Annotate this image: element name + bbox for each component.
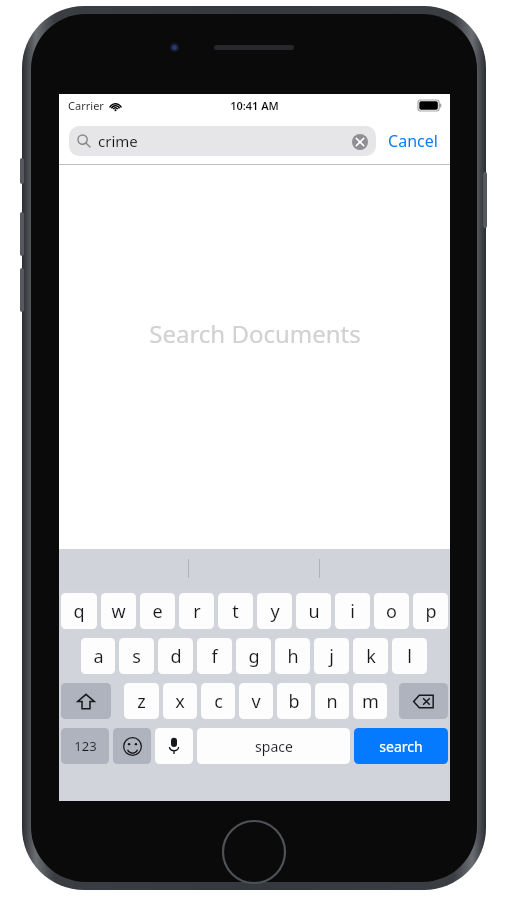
staticText: 123 [74,737,97,755]
staticText: crime [98,131,138,151]
staticText: r [193,599,201,624]
button[interactable]: c [201,683,235,719]
button[interactable]: k [353,638,388,674]
button[interactable]: Emoji [113,728,151,764]
button[interactable]: d [158,638,193,674]
staticText: i [350,599,355,624]
button[interactable]: p [413,593,448,629]
button[interactable]: search [354,728,448,764]
button[interactable]: 123 [61,728,109,764]
staticText: y [270,599,280,624]
button[interactable]: n [315,683,349,719]
button[interactable]: z [124,683,159,719]
other: Home [222,820,286,884]
button[interactable]: o [374,593,409,629]
staticText: u [308,599,320,624]
button[interactable]: Clear text [351,133,368,150]
button[interactable]: x [163,683,197,719]
staticText: Search Documents [149,317,361,350]
button[interactable]: t [218,593,253,629]
staticText: t [232,599,239,624]
button[interactable]: q [61,593,97,629]
button[interactable]: y [257,593,292,629]
staticText: n [326,689,338,714]
button[interactable]: crime [69,126,376,156]
staticText: 10:41 AM [230,98,279,113]
staticText: v [251,689,261,714]
staticText: l [407,644,412,669]
staticText: k [366,644,376,669]
button[interactable]: h [275,638,310,674]
button[interactable]: i [335,593,370,629]
button[interactable]: b [277,683,311,719]
staticText: s [132,644,141,669]
staticText: o [386,599,397,624]
staticText: e [152,599,163,624]
staticText: c [214,689,223,714]
staticText: Carrier [68,98,104,113]
button[interactable]: l [392,638,427,674]
button[interactable]: Dictation [155,728,193,764]
staticText: a [93,644,104,669]
staticText: z [137,689,146,714]
button[interactable]: m [353,683,387,719]
staticText: b [288,689,300,714]
button[interactable]: Backspace [399,683,448,719]
staticText: w [111,599,126,624]
button[interactable]: space [197,728,350,764]
staticText: h [287,644,299,669]
button[interactable]: g [236,638,271,674]
button[interactable]: Shift [61,683,111,719]
button[interactable]: f [197,638,232,674]
staticText: m [362,689,379,714]
staticText: p [425,599,437,624]
staticText: j [329,644,334,669]
button[interactable]: j [314,638,349,674]
staticText: search [379,737,423,756]
button[interactable]: r [179,593,214,629]
button[interactable]: u [296,593,331,629]
staticText: x [175,689,185,714]
button[interactable]: e [140,593,175,629]
button[interactable]: s [119,638,154,674]
staticText: q [73,599,85,624]
staticText: Cancel [388,130,438,152]
staticText: space [255,737,293,756]
button[interactable]: Cancel [386,126,440,156]
button[interactable]: w [101,593,136,629]
staticText: f [211,644,218,669]
staticText: d [170,644,182,669]
button[interactable]: v [239,683,273,719]
button[interactable]: a [81,638,115,674]
staticText: g [248,644,260,669]
